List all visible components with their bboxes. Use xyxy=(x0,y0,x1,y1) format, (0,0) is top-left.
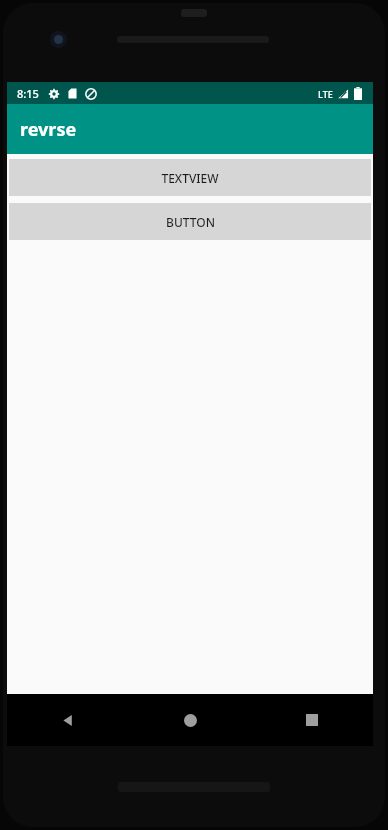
staticText: LTE xyxy=(318,88,333,100)
staticText: revrse xyxy=(20,117,77,142)
button[interactable]: Back xyxy=(7,694,129,746)
button[interactable]: Recent apps xyxy=(251,694,373,746)
button[interactable]: BUTTON xyxy=(9,203,371,240)
staticText: BUTTON xyxy=(166,214,215,230)
button[interactable]: TEXTVIEW xyxy=(9,159,371,196)
button[interactable]: Home xyxy=(129,694,251,746)
staticText: TEXTVIEW xyxy=(161,170,219,186)
staticText: 8:15 xyxy=(17,86,39,101)
